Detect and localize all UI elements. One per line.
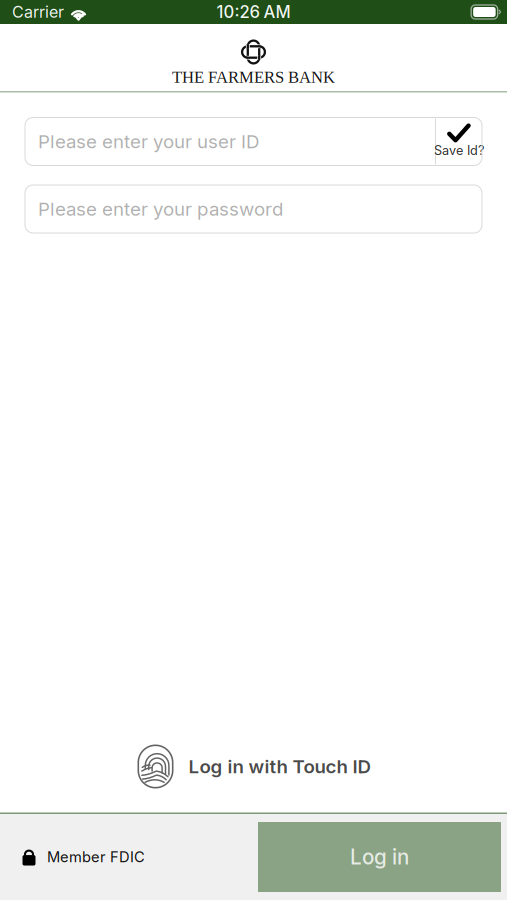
staticText: 10:26 AM (216, 2, 290, 22)
staticText: Please enter your user ID (38, 130, 259, 153)
staticText: Carrier (12, 2, 64, 22)
button[interactable]: Save Id (435, 118, 482, 164)
staticText: THE FARMERS BANK (172, 68, 335, 86)
staticText: Log in (350, 844, 409, 869)
staticText: Please enter your password (38, 198, 283, 220)
staticText: Save Id? (434, 143, 484, 158)
button[interactable]: Log in with Touch ID (136, 744, 370, 788)
button[interactable]: Log in (258, 822, 501, 892)
staticText: Member FDIC (47, 848, 145, 866)
staticText: Log in with Touch ID (188, 755, 370, 778)
